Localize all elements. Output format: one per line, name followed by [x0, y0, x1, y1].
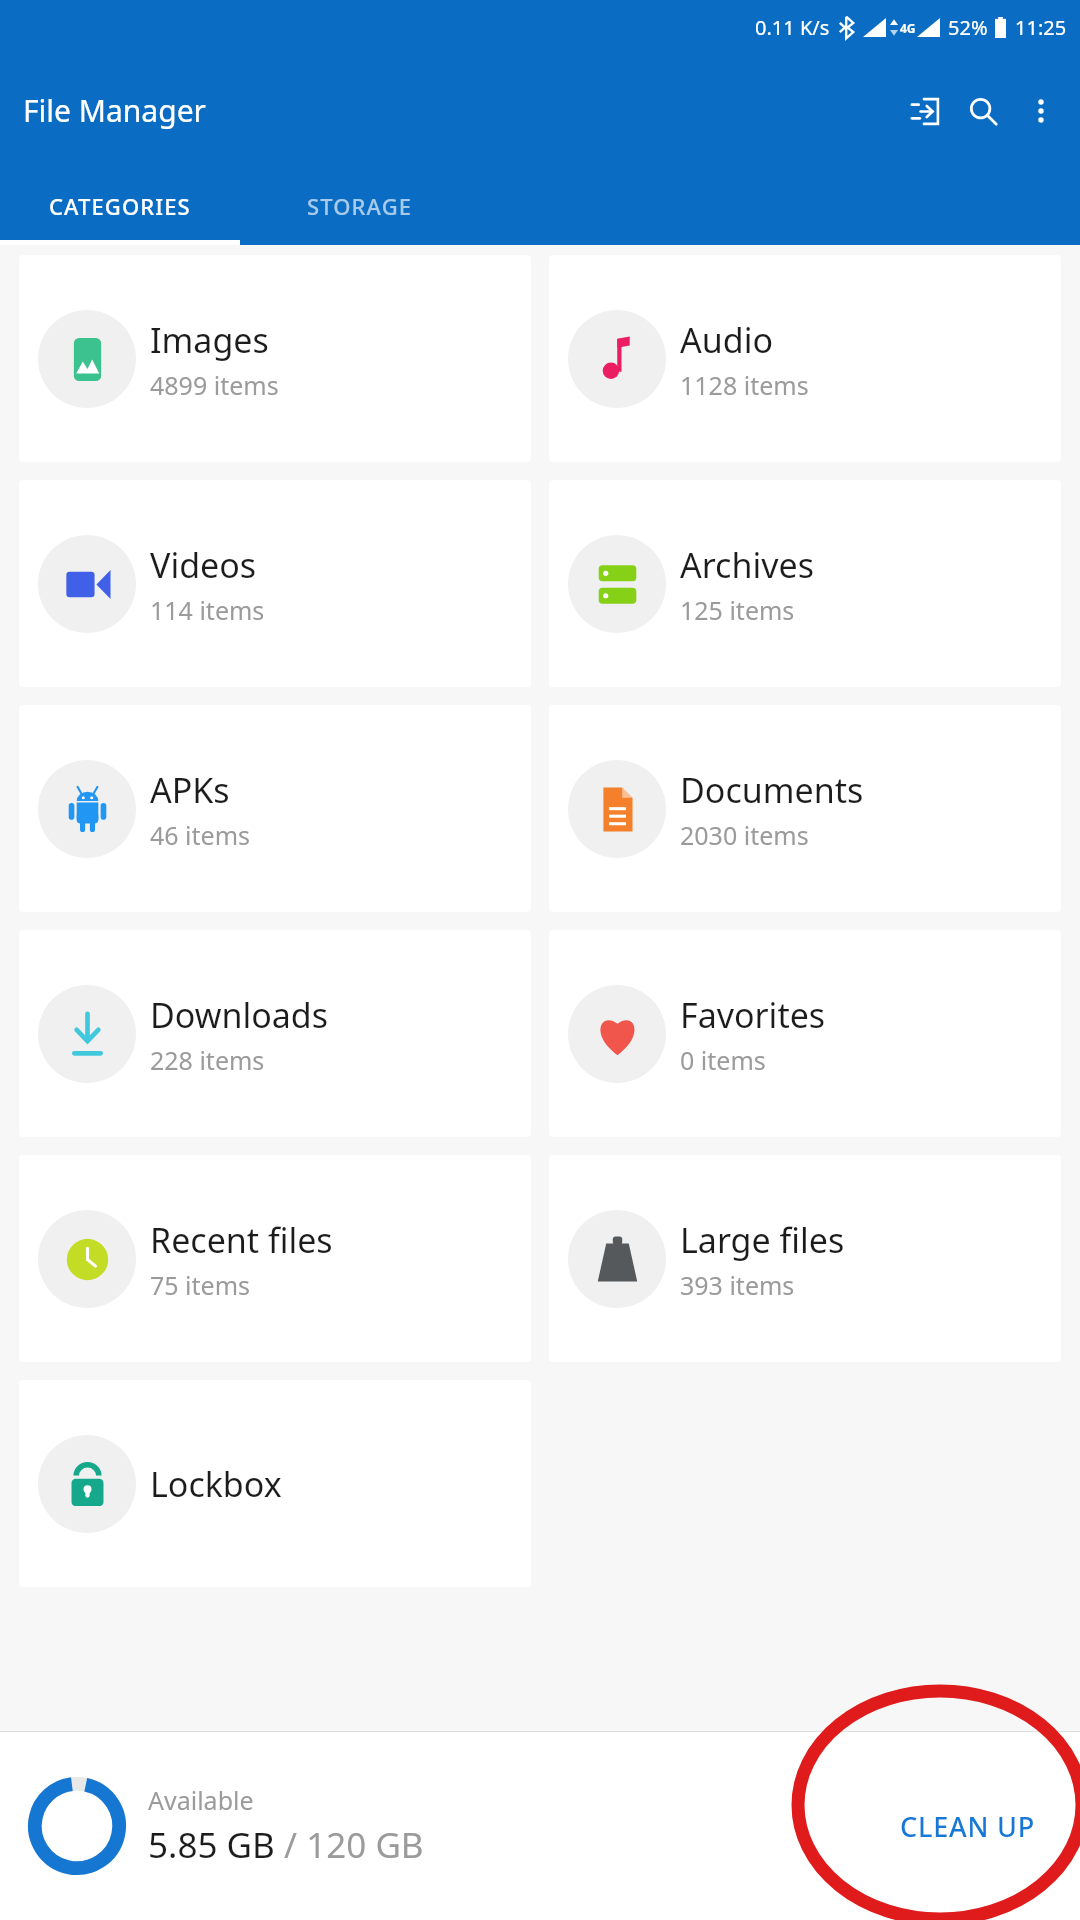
- staticText: Downloads: [150, 992, 329, 1038]
- button[interactable]: Favorites: [549, 930, 1061, 1137]
- staticText: 114 items: [150, 593, 265, 627]
- staticText: Images: [150, 317, 269, 363]
- button[interactable]: More options: [1012, 82, 1070, 140]
- staticText: CATEGORIES: [49, 191, 191, 221]
- staticText: Favorites: [680, 992, 826, 1038]
- staticText: 4G: [900, 20, 916, 36]
- staticText: 52%: [948, 14, 988, 41]
- staticText: 0.11 K/s: [755, 14, 830, 41]
- button[interactable]: Videos: [19, 480, 531, 687]
- staticText: 0 items: [680, 1043, 766, 1077]
- button[interactable]: Documents: [549, 705, 1061, 912]
- staticText: Lockbox: [150, 1461, 282, 1507]
- staticText: 4899 items: [150, 368, 279, 402]
- staticText: 2030 items: [680, 818, 809, 852]
- staticText: 5.85 GB: [148, 1821, 275, 1869]
- staticText: Large files: [680, 1217, 845, 1263]
- staticText: / 120 GB: [275, 1821, 424, 1869]
- staticText: 1128 items: [680, 368, 809, 402]
- staticText: Archives: [680, 542, 814, 588]
- staticText: 11:25: [1015, 14, 1067, 41]
- staticText: Audio: [680, 317, 773, 363]
- staticText: Documents: [680, 767, 864, 813]
- staticText: STORAGE: [307, 191, 413, 221]
- button[interactable]: Audio: [549, 255, 1061, 462]
- button[interactable]: Large files: [549, 1155, 1061, 1362]
- staticText: CLEAN UP: [900, 1808, 1036, 1845]
- staticText: Recent files: [150, 1217, 333, 1263]
- staticText: File Manager: [23, 90, 206, 131]
- button[interactable]: Archives: [549, 480, 1061, 687]
- button[interactable]: Downloads: [19, 930, 531, 1137]
- staticText: 46 items: [150, 818, 251, 852]
- staticText: Available: [148, 1783, 254, 1817]
- button[interactable]: Transfer files: [896, 82, 954, 140]
- staticText: 75 items: [150, 1268, 251, 1302]
- button[interactable]: APKs: [19, 705, 531, 912]
- button[interactable]: CLEAN UP: [880, 1792, 1056, 1861]
- button[interactable]: Images: [19, 255, 531, 462]
- button[interactable]: Search: [954, 82, 1012, 140]
- staticText: APKs: [150, 767, 230, 813]
- staticText: 228 items: [150, 1043, 265, 1077]
- button[interactable]: CATEGORIES: [0, 167, 240, 245]
- staticText: 393 items: [680, 1268, 795, 1302]
- button[interactable]: Lockbox: [19, 1380, 531, 1587]
- staticText: Videos: [150, 542, 257, 588]
- button[interactable]: STORAGE: [240, 167, 480, 245]
- staticText: 125 items: [680, 593, 795, 627]
- button[interactable]: Recent files: [19, 1155, 531, 1362]
